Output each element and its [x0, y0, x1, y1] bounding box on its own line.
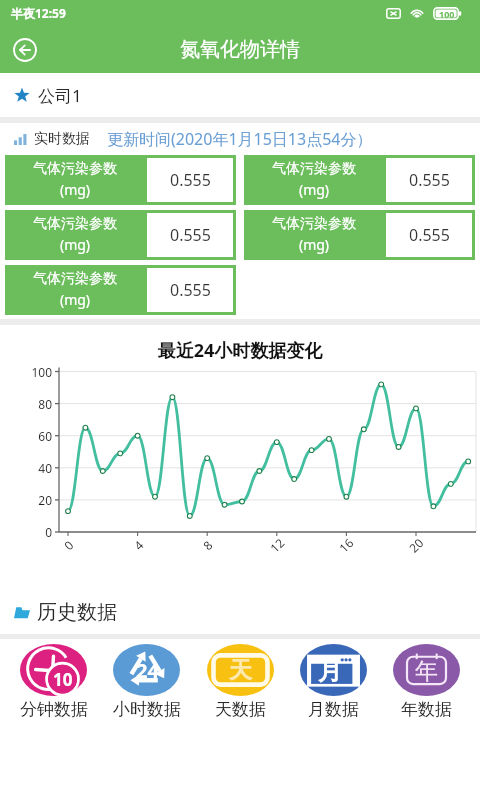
staticText: 16	[335, 534, 357, 556]
staticText: 10	[53, 668, 73, 691]
staticText: 半夜12:59	[11, 5, 66, 21]
button[interactable]: 气体污染参数 (mg)	[244, 155, 475, 205]
staticText: 12	[266, 534, 288, 556]
staticText: 月	[318, 656, 342, 686]
staticText: 100	[439, 8, 455, 20]
staticText: 天	[229, 656, 252, 685]
staticText: 气体污染参数 (mg)	[272, 160, 356, 200]
button[interactable]: 天	[194, 644, 287, 720]
staticText: 天数据	[215, 699, 266, 720]
staticText: 20	[0, 492, 52, 508]
staticText: 20	[405, 534, 427, 556]
button[interactable]: 气体污染参数 (mg)	[5, 155, 236, 205]
staticText: 气体污染参数 (mg)	[272, 215, 356, 255]
staticText: 80	[0, 396, 52, 412]
staticText: 0.555	[170, 224, 211, 246]
staticText: 气体污染参数 (mg)	[33, 160, 117, 200]
staticText: 8	[199, 537, 216, 553]
staticText: 0.555	[409, 169, 450, 191]
button[interactable]: 年	[380, 644, 473, 720]
staticText: 分钟数据	[20, 699, 88, 720]
staticText: 0	[0, 524, 52, 540]
staticText: 24	[136, 657, 159, 684]
button[interactable]: 月	[287, 644, 380, 720]
staticText: 更新时间(2020年1月15日13点54分）	[107, 128, 373, 150]
staticText: 气体污染参数 (mg)	[33, 270, 117, 310]
button[interactable]: Back	[9, 34, 41, 66]
button[interactable]: 气体污染参数 (mg)	[244, 210, 475, 260]
staticText: 0.555	[170, 169, 211, 191]
button[interactable]: 公司1	[0, 73, 480, 117]
staticText: 年	[415, 657, 438, 686]
staticText: 0.555	[170, 279, 211, 301]
staticText: 公司1	[38, 84, 82, 107]
button[interactable]: 24	[100, 644, 193, 720]
staticText: 小时数据	[113, 699, 181, 720]
staticText: 年数据	[401, 699, 452, 720]
staticText: 0	[60, 537, 77, 553]
staticText: 月数据	[308, 699, 359, 720]
staticText: 40	[0, 460, 52, 476]
staticText: 最近24小时数据变化	[0, 338, 480, 363]
button[interactable]: 气体污染参数 (mg)	[5, 265, 236, 315]
staticText: 历史数据	[37, 600, 117, 625]
staticText: 60	[0, 428, 52, 444]
staticText: 0.555	[409, 224, 450, 246]
staticText: 4	[130, 537, 147, 553]
button[interactable]: 气体污染参数 (mg)	[5, 210, 236, 260]
button[interactable]: 10	[7, 644, 100, 720]
staticText: 100	[0, 364, 52, 380]
staticText: 实时数据	[34, 130, 90, 148]
staticText: 气体污染参数 (mg)	[33, 215, 117, 255]
staticText: 氮氧化物详情	[180, 37, 300, 62]
